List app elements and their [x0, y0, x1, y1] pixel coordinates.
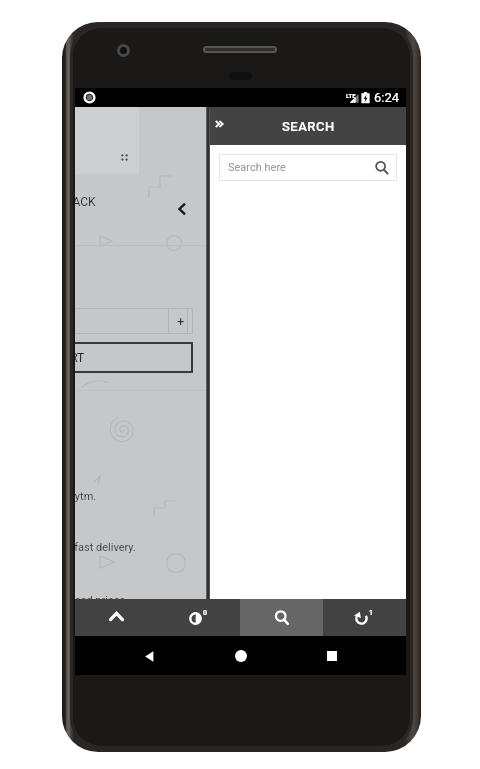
button[interactable]: Recent apps — [315, 639, 349, 673]
staticText: Guaranteed prices — [75, 594, 126, 599]
staticText: 6:24 — [374, 90, 400, 105]
staticText: Pay with Paytm. — [75, 490, 97, 503]
button[interactable]: Home — [224, 639, 258, 673]
button[interactable]: Order history, 1 item — [323, 599, 406, 636]
staticText: ADD TO CART — [75, 351, 85, 365]
button[interactable]: Offers, 0 available — [157, 599, 240, 636]
staticText: 0 — [203, 609, 208, 617]
staticText: + — [177, 314, 185, 329]
button[interactable]: Collapse — [75, 599, 157, 636]
staticText: Order for fast delivery. — [75, 541, 136, 554]
staticText: 1 — [369, 609, 374, 617]
staticText: Search here — [228, 161, 286, 174]
button[interactable]: Search here — [219, 154, 397, 181]
button[interactable]: Search — [240, 599, 323, 636]
staticText: SEARCH — [282, 119, 335, 134]
button[interactable]: Back — [132, 639, 166, 673]
button[interactable]: Close search panel — [210, 107, 234, 145]
staticText: BACK — [75, 195, 96, 209]
staticText: LTE — [346, 92, 356, 99]
